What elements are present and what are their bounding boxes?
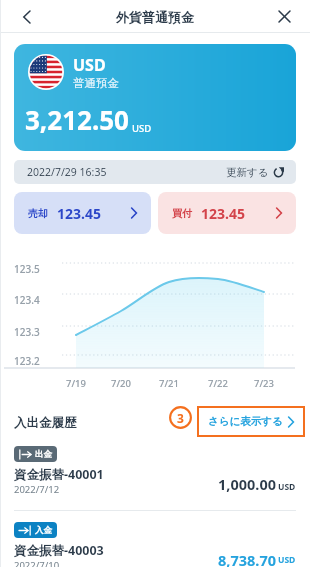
staticText: 2022/7/10	[14, 559, 60, 567]
staticText: 7/19	[60, 377, 92, 390]
staticText: さらに表示する	[208, 415, 283, 428]
staticText: USD	[278, 554, 296, 566]
button[interactable]: 更新する	[226, 166, 284, 179]
staticText: 資金振替-40003	[14, 542, 104, 559]
staticText: 2022/7/12	[14, 483, 60, 496]
staticText: 資金振替-40001	[14, 466, 104, 483]
staticText: 3,212.50	[25, 102, 129, 137]
button[interactable]: USD	[14, 44, 296, 151]
button[interactable]: 買付	[158, 192, 296, 234]
staticText: 123.45	[57, 204, 101, 223]
staticText: 1,000.00	[218, 474, 276, 494]
staticText: 売却	[28, 207, 48, 220]
staticText: 123.4	[14, 293, 40, 307]
button[interactable]: Close	[266, 0, 302, 33]
staticText: 7/20	[105, 377, 137, 390]
staticText: 7/22	[202, 377, 234, 390]
staticText: USD	[278, 481, 296, 493]
staticText: 2022/7/29 16:35	[27, 165, 107, 179]
button[interactable]: 入金	[0, 511, 310, 567]
staticText: 入出金履歴	[14, 415, 77, 431]
staticText: USD	[132, 122, 152, 135]
button[interactable]: 売却	[14, 192, 151, 234]
staticText: 出金	[35, 449, 52, 460]
staticText: USD	[73, 54, 106, 76]
staticText: 7/23	[248, 377, 280, 390]
staticText: 買付	[172, 207, 192, 220]
button[interactable]: さらに表示する	[208, 406, 294, 437]
staticText: 普通預金	[73, 76, 119, 90]
staticText: 8,738.70	[218, 550, 276, 567]
staticText: 123.3	[14, 325, 40, 339]
staticText: 外貨普通預金	[116, 9, 194, 25]
staticText: 3	[177, 410, 184, 426]
staticText: 更新する	[226, 166, 269, 179]
staticText: 123.5	[14, 262, 40, 276]
staticText: 123.2	[14, 354, 40, 368]
staticText: 入金	[35, 525, 52, 536]
staticText: 123.45	[201, 204, 245, 223]
button[interactable]: 出金	[0, 439, 310, 510]
button[interactable]: Back	[8, 0, 44, 33]
staticText: 7/21	[153, 377, 185, 390]
